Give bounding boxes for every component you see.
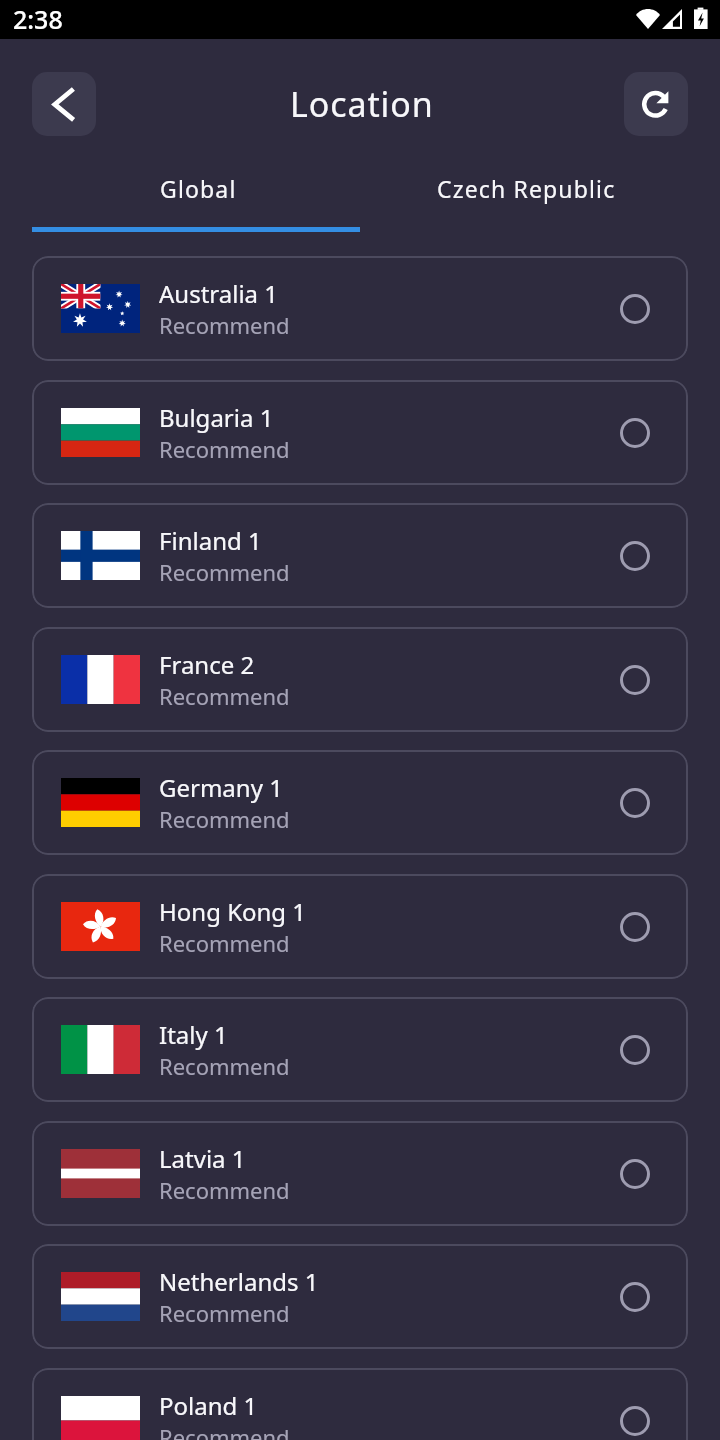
staticText: Recommend xyxy=(159,1175,290,1205)
staticText: France 2 xyxy=(159,648,255,681)
button[interactable]: Germany 1 xyxy=(32,750,688,855)
button[interactable]: Back xyxy=(32,72,96,136)
staticText: Recommend xyxy=(159,681,290,711)
staticText: Italy 1 xyxy=(159,1018,228,1051)
staticText: 2:38 xyxy=(13,2,63,36)
button[interactable]: Czech Republic xyxy=(360,169,688,227)
staticText: Germany 1 xyxy=(159,771,283,804)
button[interactable]: Refresh xyxy=(624,72,688,136)
staticText: Czech Republic xyxy=(437,173,616,204)
staticText: Recommend xyxy=(159,1298,290,1328)
button[interactable]: Bulgaria 1 xyxy=(32,380,688,485)
staticText: Recommend xyxy=(159,434,290,464)
staticText: Hong Kong 1 xyxy=(159,895,307,928)
staticText: Recommend xyxy=(159,310,290,340)
staticText: Global xyxy=(160,173,237,204)
staticText: Location xyxy=(290,81,434,127)
staticText: Bulgaria 1 xyxy=(159,401,274,434)
button[interactable]: Netherlands 1 xyxy=(32,1244,688,1349)
button[interactable]: France 2 xyxy=(32,627,688,732)
staticText: Netherlands 1 xyxy=(159,1265,319,1298)
button[interactable]: Finland 1 xyxy=(32,503,688,608)
button[interactable]: Global xyxy=(32,169,360,227)
staticText: Finland 1 xyxy=(159,524,262,557)
staticText: Poland 1 xyxy=(159,1389,258,1422)
staticText: Latvia 1 xyxy=(159,1142,246,1175)
button[interactable]: Italy 1 xyxy=(32,997,688,1102)
staticText: Recommend xyxy=(159,804,290,834)
button[interactable]: Australia 1 xyxy=(32,256,688,361)
button[interactable]: Hong Kong 1 xyxy=(32,874,688,979)
button[interactable]: Latvia 1 xyxy=(32,1121,688,1226)
button[interactable]: Poland 1 xyxy=(32,1368,688,1440)
staticText: Recommend xyxy=(159,1422,290,1440)
staticText: Recommend xyxy=(159,1051,290,1081)
staticText: Recommend xyxy=(159,557,290,587)
staticText: Australia 1 xyxy=(159,277,279,310)
staticText: Recommend xyxy=(159,928,290,958)
